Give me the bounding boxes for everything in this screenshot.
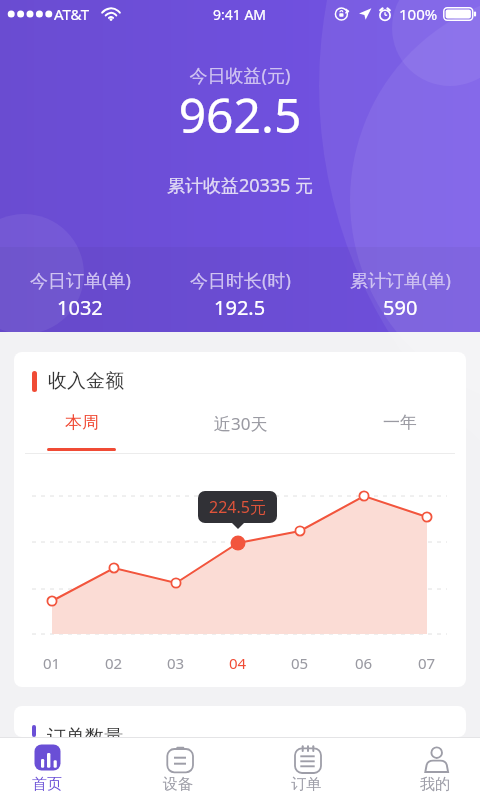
staticText: 近30天 [214, 412, 268, 435]
staticText: 590 [383, 294, 418, 321]
staticText: 07 [418, 653, 436, 673]
staticText: 设备 [163, 775, 193, 794]
staticText: 192.5 [214, 294, 266, 321]
staticText: 05 [291, 653, 309, 673]
staticText: 04 [229, 653, 247, 673]
button[interactable]: 我的 [387, 737, 480, 800]
staticText: 9:41 AM [213, 5, 267, 24]
staticText: 06 [355, 653, 373, 673]
staticText: 本周 [65, 412, 99, 433]
staticText: 02 [105, 653, 123, 673]
staticText: 首页 [32, 775, 62, 794]
staticText: 一年 [383, 412, 417, 433]
staticText: 订单数量 [47, 725, 123, 737]
staticText: 224.5元 [209, 496, 266, 518]
staticText: 累计订单(单) [350, 268, 451, 293]
button[interactable]: 首页 [0, 737, 95, 800]
staticText: 962.5 [0, 82, 480, 147]
button[interactable]: 近30天 [190, 406, 291, 454]
button[interactable]: 设备 [130, 737, 226, 800]
staticText: 收入金额 [48, 369, 124, 393]
staticText: 01 [43, 653, 61, 673]
staticText: 1032 [57, 294, 103, 321]
staticText: 今日订单(单) [30, 268, 131, 293]
button[interactable]: 本周 [31, 406, 132, 454]
button[interactable]: 订单 [258, 737, 354, 800]
staticText: 我的 [420, 775, 450, 794]
staticText: 累计收益20335 元 [0, 173, 480, 198]
staticText: 100% [399, 4, 438, 24]
staticText: 今日收益(元) [0, 63, 480, 88]
staticText: 今日时长(时) [190, 268, 291, 293]
button[interactable]: 一年 [349, 406, 450, 454]
staticText: 03 [167, 653, 185, 673]
staticText: 订单 [291, 775, 321, 794]
staticText: AT&T [54, 4, 89, 24]
